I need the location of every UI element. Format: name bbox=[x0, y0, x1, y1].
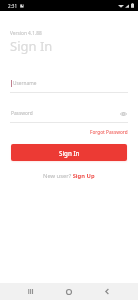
button[interactable]: Sign In bbox=[11, 144, 127, 161]
button[interactable]: Password bbox=[0, 106, 138, 124]
staticText: Sign In bbox=[59, 149, 80, 157]
button[interactable]: Username bbox=[0, 76, 138, 94]
button[interactable]: Home bbox=[57, 283, 81, 300]
button[interactable]: New user? Sign Up bbox=[43, 172, 95, 180]
button[interactable]: Forgot Password bbox=[90, 129, 128, 135]
button[interactable]: Back bbox=[95, 283, 119, 300]
button[interactable]: Show password bbox=[118, 109, 128, 119]
staticText: Username bbox=[13, 80, 37, 87]
button[interactable]: Recents bbox=[18, 283, 42, 300]
staticText: 2:31 bbox=[8, 3, 18, 9]
staticText: Password bbox=[11, 110, 33, 117]
staticText: Sign In bbox=[10, 37, 53, 55]
staticText: Version 4.1.88 bbox=[10, 30, 42, 37]
